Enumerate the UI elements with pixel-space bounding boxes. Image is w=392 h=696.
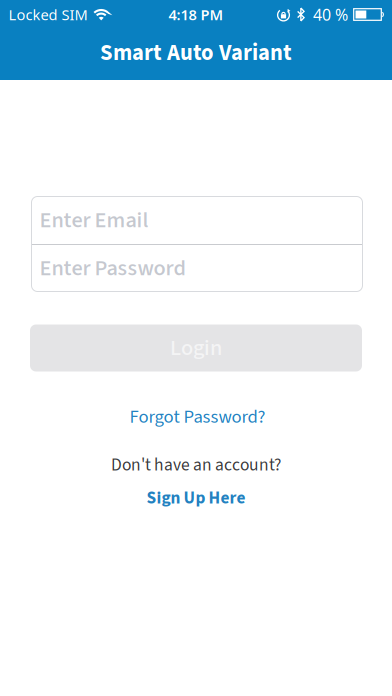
staticText: 4:18 PM	[168, 5, 223, 24]
staticText: Smart Auto Variant	[100, 37, 292, 69]
staticText: Locked SIM	[8, 5, 87, 24]
staticText: Sign Up Here	[146, 486, 245, 510]
button[interactable]: Enter Email	[31, 196, 362, 244]
button[interactable]: Forgot Password?	[129, 404, 265, 430]
button[interactable]: Login	[30, 324, 362, 371]
staticText: Enter Password	[39, 252, 186, 284]
staticText: 40 %	[313, 4, 348, 25]
staticText: Forgot Password?	[129, 404, 265, 430]
staticText: Don't have an account?	[111, 453, 281, 477]
button[interactable]: Sign Up Here	[146, 486, 245, 510]
button[interactable]: Enter Password	[31, 245, 362, 291]
staticText: Enter Email	[39, 204, 148, 236]
staticText: Login	[170, 332, 222, 364]
